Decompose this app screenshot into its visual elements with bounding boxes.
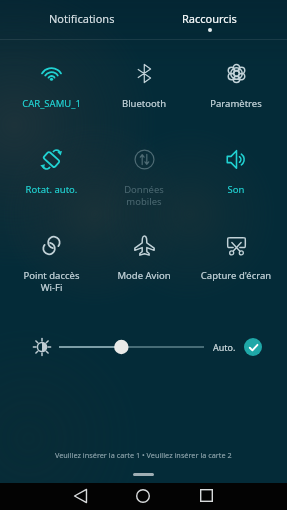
button[interactable]: Recents [178,482,234,509]
staticText: Capture d'écran [190,269,282,282]
button[interactable]: Rotat. auto. [5,126,98,212]
button[interactable]: Point daccès Wi-Fi [5,212,98,298]
staticText: Rotat. auto. [5,183,98,196]
button[interactable]: Notifications [0,0,143,39]
staticText: CAR_SAMU_1 [5,97,98,110]
button[interactable]: Bluetooth [98,40,190,126]
button[interactable]: Auto brightness [244,338,262,356]
staticText: Raccourcis [182,11,237,26]
button[interactable]: Son [190,126,282,212]
staticText: Bluetooth [98,97,190,110]
button[interactable]: Raccourcis [143,0,287,39]
button[interactable]: Back [52,482,108,509]
staticText: Point daccès Wi-Fi [5,269,98,294]
button[interactable]: Mode Avion [98,212,190,298]
staticText: Mode Avion [98,269,190,282]
staticText: Notifications [49,11,115,26]
staticText: Auto. [213,341,236,353]
staticText: Paramètres [190,97,282,110]
staticText: Données mobiles [98,183,190,208]
button[interactable]: CAR_SAMU_1 [5,40,98,126]
button[interactable]: Home [115,482,171,509]
button[interactable]: Paramètres [190,40,282,126]
button[interactable]: Données mobiles [98,126,190,212]
button[interactable]: Capture d'écran [190,212,282,298]
staticText: Son [190,183,282,196]
staticText: Veuillez insérer la carte 1 • Veuillez i… [55,450,232,460]
